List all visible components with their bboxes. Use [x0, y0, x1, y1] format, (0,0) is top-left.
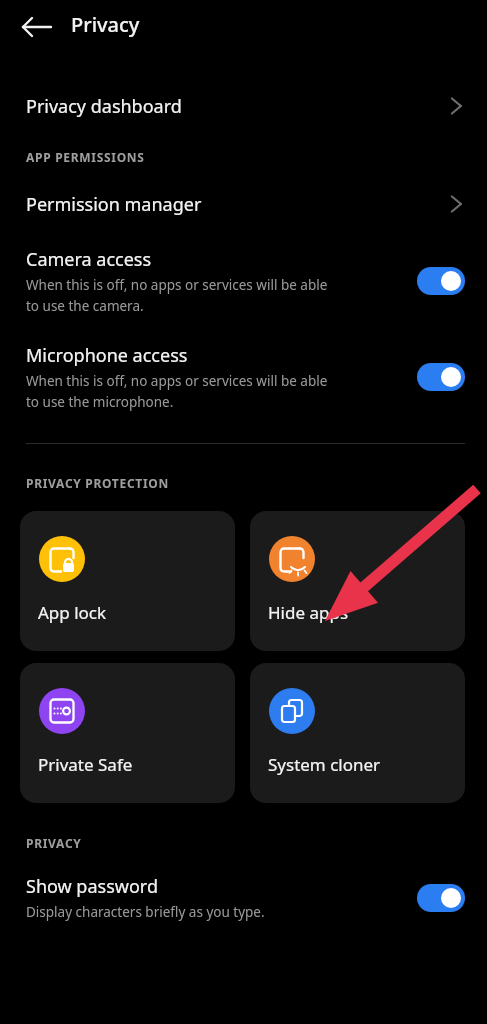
- button: PRIVACY PROTECTION: [26, 475, 487, 491]
- button[interactable]: App lock: [20, 511, 235, 651]
- button[interactable]: Hide apps: [250, 511, 465, 651]
- staticText: Microphone access: [26, 343, 188, 368]
- staticText: Show password: [26, 874, 158, 899]
- staticText: Hide apps: [268, 601, 349, 624]
- button[interactable]: Camera access toggle: [417, 267, 465, 295]
- button[interactable]: Back: [16, 10, 62, 44]
- button[interactable]: Show password toggle: [417, 884, 465, 912]
- staticText: Display characters briefly as you type.: [26, 903, 265, 921]
- staticText: System cloner: [268, 753, 381, 776]
- button: PRIVACY: [26, 835, 487, 851]
- button[interactable]: Microphone access toggle: [417, 363, 465, 391]
- button[interactable]: Show password: [0, 872, 487, 923]
- button[interactable]: Permission manager: [0, 187, 487, 221]
- staticText: When this is off, no apps or services wi…: [26, 276, 328, 315]
- staticText: When this is off, no apps or services wi…: [26, 372, 328, 411]
- button[interactable]: Privacy dashboard: [0, 89, 487, 123]
- button[interactable]: Private Safe: [20, 663, 235, 803]
- staticText: Private Safe: [38, 753, 133, 776]
- staticText: Camera access: [26, 247, 152, 272]
- button[interactable]: Camera access: [0, 245, 487, 317]
- staticText: Privacy: [71, 11, 140, 38]
- button[interactable]: Microphone access: [0, 341, 487, 413]
- button[interactable]: System cloner: [250, 663, 465, 803]
- staticText: App lock: [38, 601, 107, 624]
- staticText: Permission manager: [26, 192, 447, 217]
- staticText: Privacy dashboard: [26, 94, 447, 119]
- button: APP PERMISSIONS: [26, 149, 487, 165]
